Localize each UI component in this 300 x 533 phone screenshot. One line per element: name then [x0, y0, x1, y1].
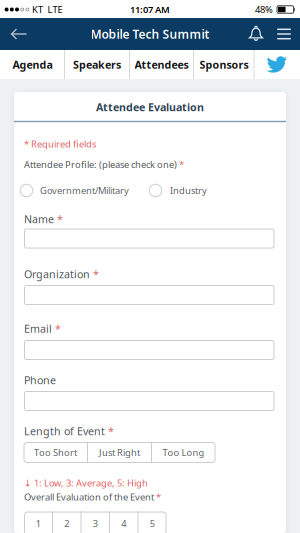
staticText: 4 — [121, 517, 126, 530]
button[interactable]: Agenda — [1, 50, 63, 79]
staticText: * — [154, 491, 161, 503]
staticText: Organization — [24, 267, 90, 281]
staticText: Mobile Tech Summit — [90, 26, 209, 42]
staticText: * Required fields — [24, 138, 96, 150]
button[interactable]: Too Short — [23, 442, 87, 463]
button[interactable]: Just Right — [87, 442, 151, 463]
staticText: Just Right — [99, 446, 140, 459]
staticText: Attendee Evaluation — [96, 100, 204, 114]
staticText: 1 — [36, 517, 41, 530]
button[interactable]: Notifications — [245, 22, 267, 46]
staticText: 2 — [64, 517, 69, 530]
button[interactable]: Attendees — [131, 50, 192, 79]
staticText: Too Short — [34, 446, 77, 459]
button[interactable]: Speakers — [66, 50, 128, 79]
staticText: KT — [32, 3, 43, 16]
button[interactable]: 1 — [24, 511, 52, 533]
button[interactable]: Back — [5, 22, 32, 45]
button[interactable]: 5 — [138, 511, 166, 533]
staticText: Attendees — [134, 57, 188, 72]
staticText: * — [52, 321, 61, 336]
staticText: Agenda — [12, 57, 52, 72]
staticText: Attendee Profile: (please check one) — [24, 158, 179, 171]
staticText: * — [90, 267, 99, 281]
staticText: LTE — [47, 3, 62, 16]
staticText: Phone — [24, 373, 56, 387]
staticText: Speakers — [73, 57, 121, 72]
button[interactable]: Sponsors — [195, 50, 253, 79]
staticText: * — [179, 158, 184, 171]
button[interactable]: 2 — [52, 511, 81, 533]
staticText: 5 — [150, 517, 155, 530]
button[interactable]: 3 — [81, 511, 109, 533]
staticText: * — [54, 212, 63, 226]
button[interactable]: Industry — [148, 183, 163, 198]
button[interactable]: Government/Military — [19, 183, 34, 198]
button[interactable]: Email text field — [24, 340, 274, 360]
button[interactable]: Too Long — [151, 442, 215, 463]
staticText: Sponsors — [199, 57, 248, 72]
staticText: ↓ 1: Low, 3: Average, 5: High — [24, 477, 148, 489]
button[interactable]: Name text field — [24, 228, 274, 248]
button[interactable]: Menu — [272, 24, 296, 44]
staticText: Overall Evaluation of the Event — [24, 491, 154, 503]
staticText: 11:07 AM — [130, 3, 170, 16]
staticText: Government/Military — [40, 184, 129, 197]
staticText: Name — [24, 212, 54, 226]
staticText: Email — [24, 321, 52, 336]
button[interactable]: Twitter — [262, 52, 291, 77]
staticText: 3 — [93, 517, 98, 530]
staticText: * — [105, 424, 114, 438]
button[interactable]: Phone text field — [24, 391, 274, 411]
staticText: 48% — [255, 3, 273, 16]
button[interactable]: 4 — [109, 511, 138, 533]
button[interactable]: Organization text field — [24, 285, 274, 305]
staticText: Industry — [170, 184, 207, 197]
staticText: Too Long — [162, 446, 204, 459]
staticText: Length of Event — [24, 424, 105, 438]
